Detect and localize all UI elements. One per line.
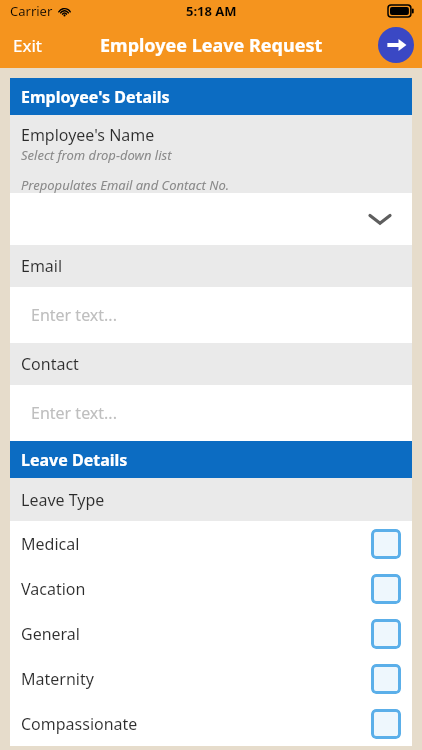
staticText: Select from drop-down list xyxy=(21,146,172,164)
button[interactable]: Enter text... xyxy=(10,287,412,343)
staticText: Exit xyxy=(13,34,42,57)
staticText: Employee's Details xyxy=(21,86,170,108)
button[interactable]: Leave Details xyxy=(10,441,412,478)
staticText: Medical xyxy=(21,533,371,555)
staticText: Email xyxy=(21,255,63,277)
staticText: General xyxy=(21,623,371,645)
staticText: Enter text... xyxy=(31,304,117,326)
staticText: 5:18 AM xyxy=(186,2,237,20)
staticText: Prepopulates Email and Contact No. xyxy=(21,176,230,193)
button[interactable]: Next xyxy=(378,27,414,63)
button[interactable]: Exit xyxy=(0,26,55,65)
button[interactable]: Select employee xyxy=(10,193,412,245)
staticText: Leave Details xyxy=(21,449,128,471)
button[interactable]: Compassionate xyxy=(10,701,412,746)
button[interactable]: Vacation xyxy=(10,566,412,611)
staticText: Leave Type xyxy=(21,489,105,511)
button[interactable]: Medical xyxy=(10,521,412,566)
button[interactable]: Employee's Details xyxy=(10,78,412,115)
staticText: Employee's Name xyxy=(21,124,155,146)
staticText: Contact xyxy=(21,353,79,375)
staticText: Vacation xyxy=(21,578,371,600)
staticText: Maternity xyxy=(21,668,371,690)
button[interactable]: Employee's Name xyxy=(10,115,412,193)
button[interactable]: Maternity xyxy=(10,656,412,701)
button[interactable]: Enter text... xyxy=(10,385,412,441)
staticText: Employee Leave Request xyxy=(100,33,323,58)
button[interactable]: General xyxy=(10,611,412,656)
staticText: Enter text... xyxy=(31,402,117,424)
staticText: Carrier xyxy=(10,2,53,20)
staticText: Compassionate xyxy=(21,713,371,735)
